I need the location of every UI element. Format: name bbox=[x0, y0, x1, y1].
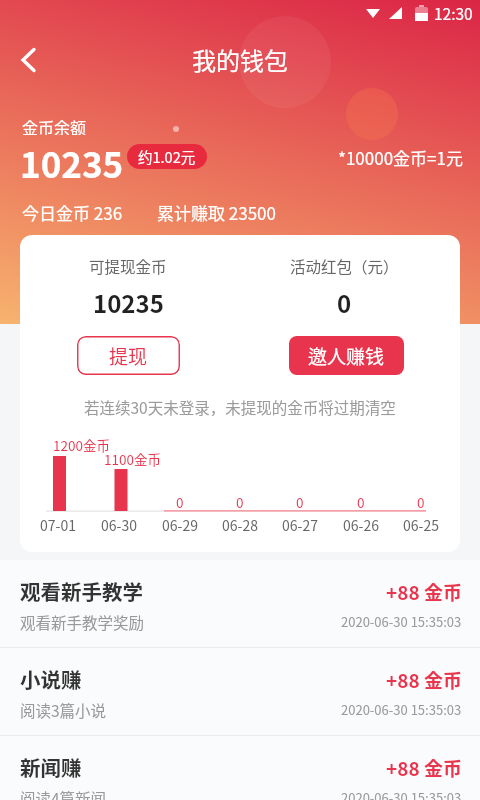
staticText: 2020-06-30 15:35:03 bbox=[341, 788, 462, 800]
staticText: *10000金币=1元 bbox=[338, 145, 463, 167]
staticText: 观看新手教学 bbox=[20, 576, 143, 602]
staticText: 可提现金币 bbox=[89, 255, 167, 275]
staticText: +88 金币 bbox=[386, 666, 462, 690]
staticText: 1100金币 bbox=[104, 449, 161, 467]
staticText: +88 金币 bbox=[386, 754, 462, 778]
button[interactable]: 观看新手教学 bbox=[0, 560, 480, 648]
staticText: 06-25 bbox=[403, 515, 439, 533]
staticText: 观看新手教学奖励 bbox=[20, 611, 145, 631]
staticText: 2020-06-30 15:35:03 bbox=[341, 612, 462, 630]
staticText: 0 bbox=[357, 492, 365, 510]
staticText: 今日金币 236 bbox=[22, 200, 123, 224]
button[interactable]: 邀人赚钱 bbox=[289, 336, 404, 375]
staticText: 小说赚 bbox=[20, 664, 82, 690]
staticText: 新闻赚 bbox=[20, 752, 82, 778]
staticText: 0 bbox=[176, 492, 184, 510]
staticText: 06-30 bbox=[101, 515, 137, 533]
staticText: 10235 bbox=[93, 285, 164, 315]
button[interactable]: 提现 bbox=[77, 336, 180, 375]
staticText: 阅读3篇小说 bbox=[20, 699, 107, 719]
staticText: 我的钱包 bbox=[192, 42, 288, 76]
staticText: 活动红包（元） bbox=[290, 255, 399, 275]
button[interactable]: 新闻赚 bbox=[0, 736, 480, 800]
staticText: 07-01 bbox=[40, 515, 76, 533]
staticText: 0 bbox=[236, 492, 244, 510]
staticText: 邀人赚钱 bbox=[308, 342, 385, 370]
staticText: 1200金币 bbox=[53, 435, 110, 453]
staticText: 12:30 bbox=[434, 2, 473, 24]
staticText: 金币余额 bbox=[22, 115, 87, 135]
staticText: 06-26 bbox=[343, 515, 379, 533]
staticText: +88 金币 bbox=[386, 578, 462, 602]
staticText: 06-28 bbox=[222, 515, 258, 533]
staticText: 阅读4篇新闻 bbox=[20, 787, 107, 800]
staticText: 累计赚取 23500 bbox=[157, 200, 276, 224]
staticText: 提现 bbox=[109, 342, 148, 370]
staticText: 约1.02元 bbox=[138, 146, 196, 167]
staticText: 若连续30天未登录，未提现的金币将过期清空 bbox=[84, 396, 396, 416]
button[interactable]: 小说赚 bbox=[0, 648, 480, 736]
staticText: 06-29 bbox=[162, 515, 198, 533]
staticText: 0 bbox=[337, 285, 352, 315]
staticText: 06-27 bbox=[282, 515, 318, 533]
staticText: 0 bbox=[417, 492, 425, 510]
staticText: 2020-06-30 15:35:03 bbox=[341, 700, 462, 718]
staticText: 0 bbox=[296, 492, 304, 510]
button[interactable] bbox=[10, 42, 46, 78]
staticText: 10235 bbox=[20, 137, 124, 179]
